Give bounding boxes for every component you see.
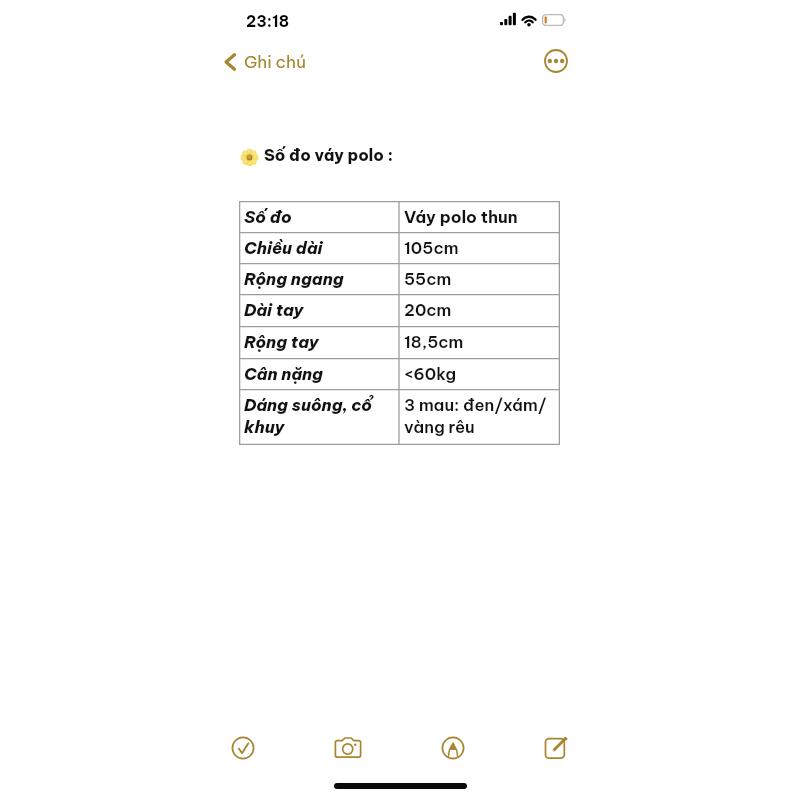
staticText: 105cm — [404, 237, 459, 258]
staticText: Rộng ngang — [244, 268, 344, 289]
staticText: 3 mau: đen/xám/ vàng rêu — [404, 394, 547, 437]
staticText: 18,5cm — [404, 331, 464, 352]
staticText: Rộng tay — [244, 331, 319, 352]
button[interactable]: New note — [538, 730, 574, 766]
staticText: Số đo váy polo : — [264, 145, 394, 165]
button[interactable]: Markup — [435, 730, 471, 766]
staticText: Số đo — [244, 206, 292, 227]
staticText: 20cm — [404, 299, 452, 320]
staticText: Cân nặng — [244, 363, 323, 384]
staticText: Chiều dài — [244, 237, 323, 258]
button[interactable]: Ghi chú — [221, 47, 308, 77]
staticText: <60kg — [404, 363, 456, 384]
button[interactable]: Checklist — [225, 730, 261, 766]
staticText: Váy polo thun — [404, 206, 518, 227]
staticText: Ghi chú — [244, 51, 306, 73]
staticText: Dáng suông, cổ khuy — [244, 394, 372, 437]
staticText: 55cm — [404, 268, 452, 289]
staticText: 23:18 — [246, 11, 290, 31]
staticText: Dài tay — [244, 299, 304, 320]
button[interactable]: More options — [544, 49, 568, 73]
button[interactable]: Camera — [330, 730, 366, 766]
